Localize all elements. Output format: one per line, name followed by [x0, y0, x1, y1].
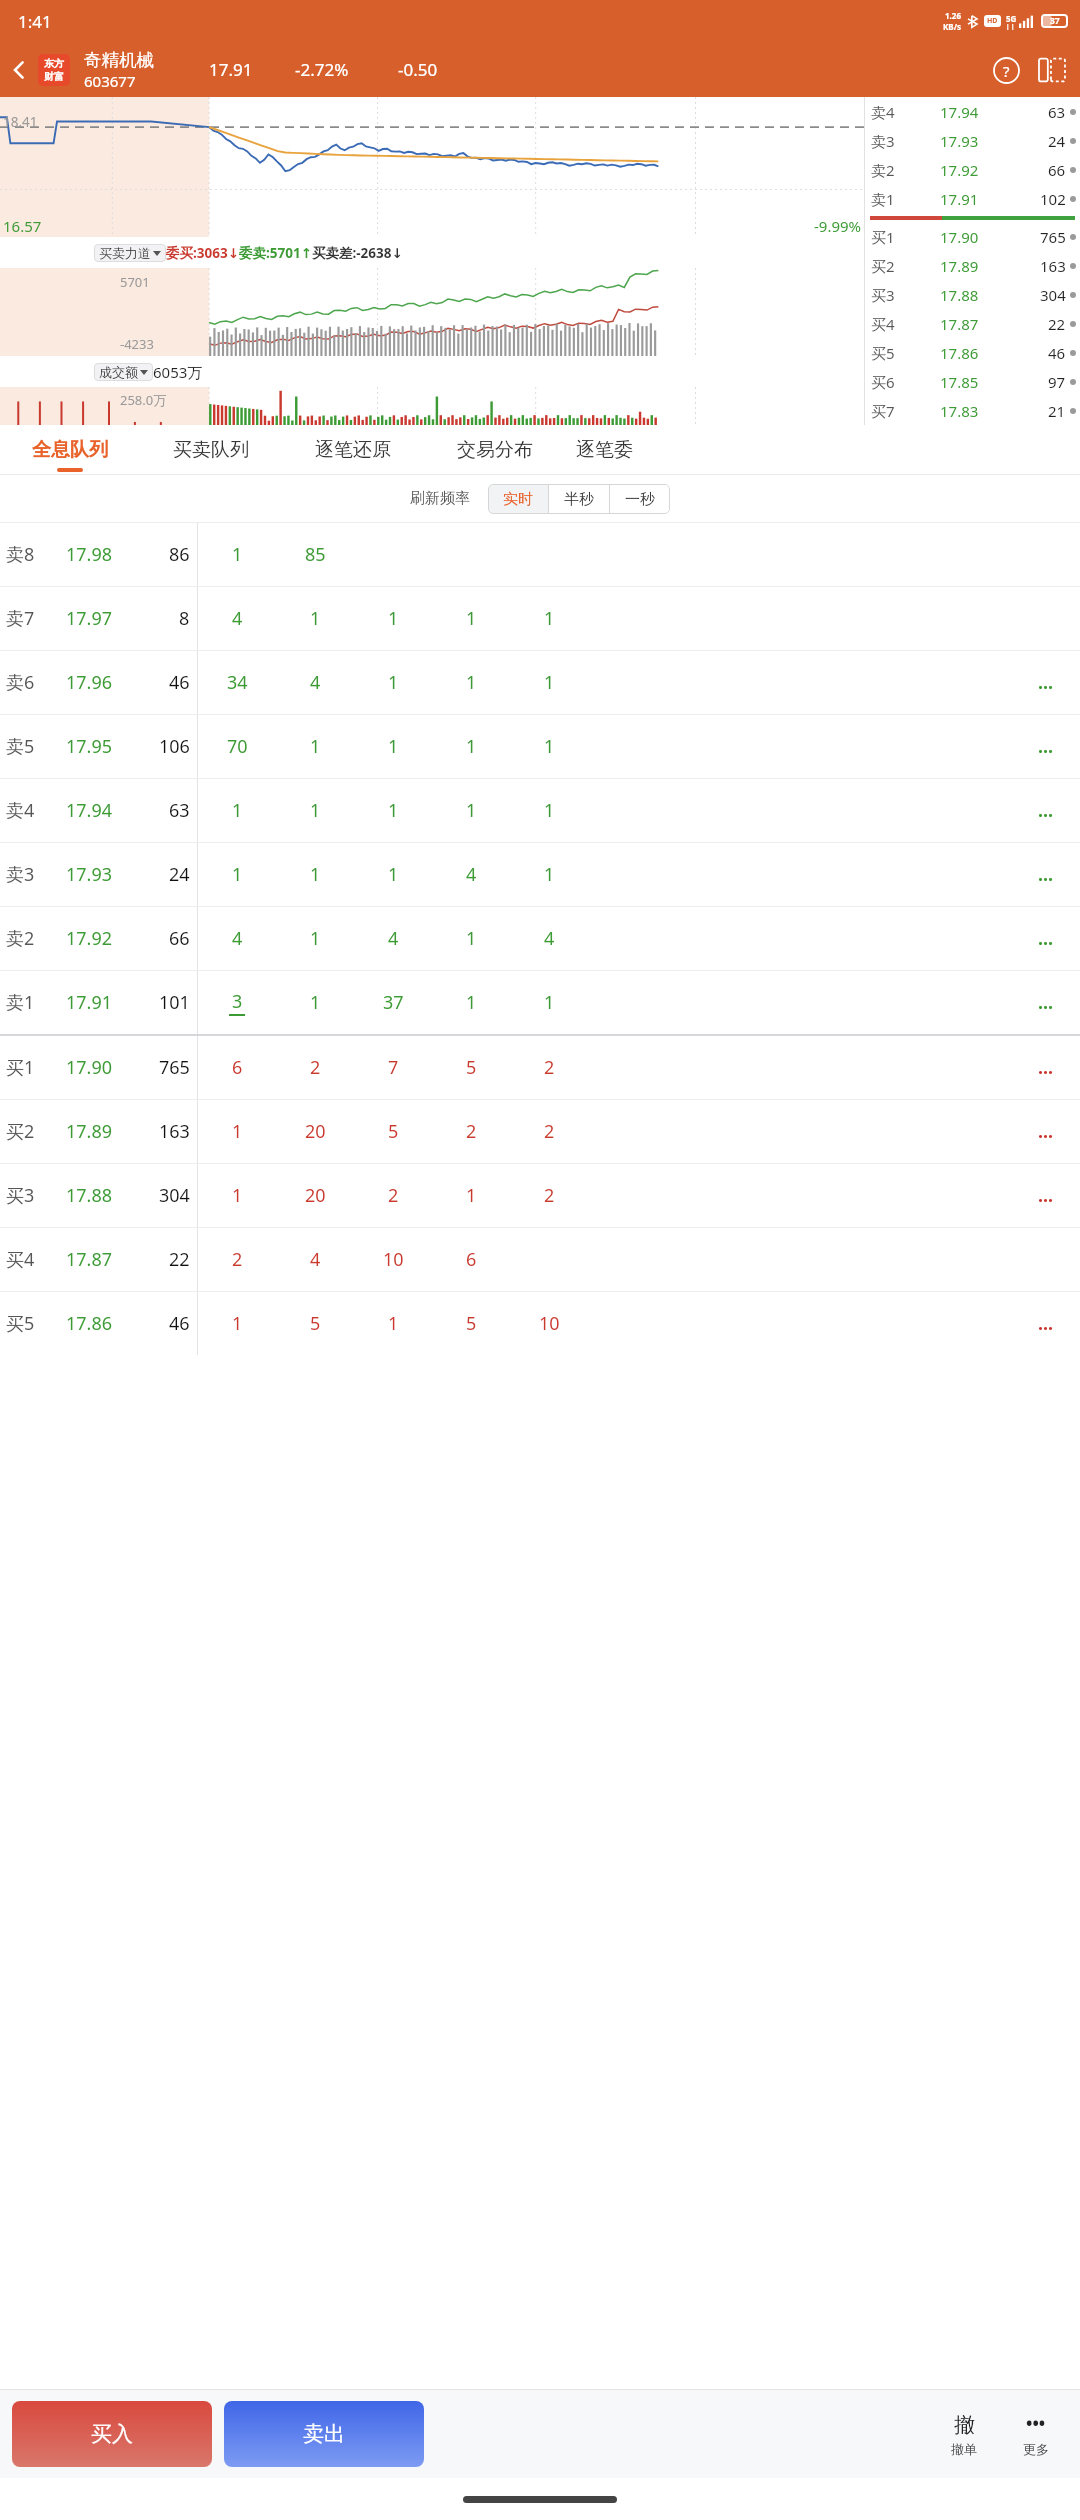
staticText: ?	[1003, 61, 1010, 81]
staticText: 106	[159, 734, 190, 759]
button[interactable]: 逐笔委	[566, 425, 676, 475]
staticText: 1	[466, 734, 477, 759]
staticText: 17.91	[940, 189, 979, 209]
staticText: 1	[466, 798, 477, 823]
button[interactable]: 买入	[12, 2401, 212, 2467]
staticText: 买3	[6, 1183, 50, 1208]
staticText: 1	[232, 542, 243, 567]
button[interactable]: 买卖队列	[140, 425, 282, 475]
staticText: HD	[987, 16, 998, 26]
button[interactable]: 买7	[871, 396, 1076, 425]
staticText: 17.88	[66, 1183, 113, 1208]
staticText: 17.86	[66, 1311, 113, 1336]
button[interactable]: Multi window	[1028, 46, 1076, 94]
button[interactable]: 买1	[0, 1036, 1080, 1099]
staticText: ...	[1038, 1311, 1054, 1336]
staticText: 2	[466, 1119, 477, 1144]
button[interactable]: 买1	[871, 222, 1076, 251]
button[interactable]: 卖3	[0, 843, 1080, 906]
staticText: 1	[466, 990, 477, 1015]
button[interactable]: Back	[0, 42, 38, 97]
button[interactable]: 卖8	[0, 523, 1080, 586]
button[interactable]: 买3	[871, 280, 1076, 309]
button[interactable]: •••	[1004, 2390, 1068, 2478]
staticText: 17.85	[940, 372, 979, 392]
staticText: ...	[1038, 862, 1054, 887]
button[interactable]: 卖7	[0, 587, 1080, 650]
staticText: 17.90	[66, 1055, 113, 1080]
button[interactable]: 成交额	[99, 364, 148, 380]
staticText: 34	[227, 670, 248, 695]
staticText: 17.93	[940, 131, 979, 151]
staticText: 1	[388, 862, 399, 887]
button[interactable]: 买2	[0, 1100, 1080, 1163]
staticText: 卖3	[6, 862, 50, 887]
staticText: 委卖:5701↑	[239, 244, 312, 262]
staticText: ...	[1038, 1055, 1054, 1080]
button[interactable]: 卖1	[0, 971, 1080, 1034]
staticText: 1	[232, 1311, 243, 1336]
button[interactable]: 买5	[871, 338, 1076, 367]
staticText: 买4	[6, 1247, 50, 1272]
staticText: 1	[388, 670, 399, 695]
staticText: 6053万	[153, 362, 203, 382]
staticText: 2	[388, 1183, 399, 1208]
staticText: 买卖差:-2638↓	[312, 244, 403, 262]
staticText: 逐笔委	[576, 438, 633, 462]
staticText: 10	[383, 1247, 404, 1272]
staticText: 66	[1048, 160, 1066, 180]
button[interactable]: 买2	[871, 251, 1076, 280]
staticText: 765	[1040, 227, 1066, 247]
staticText: 6	[232, 1055, 243, 1080]
staticText: 卖5	[6, 734, 50, 759]
staticText: 1	[466, 670, 477, 695]
button[interactable]: 一秒	[610, 484, 670, 514]
staticText: ...	[1038, 926, 1054, 951]
staticText: 1	[232, 1119, 243, 1144]
staticText: 603677	[84, 71, 136, 91]
button[interactable]: 卖4	[871, 97, 1076, 126]
button[interactable]: 买3	[0, 1164, 1080, 1227]
staticText: 买1	[6, 1055, 50, 1080]
staticText: 1	[232, 1183, 243, 1208]
staticText: 46	[1048, 343, 1066, 363]
staticText: 1	[310, 606, 321, 631]
button[interactable]: 逐笔还原	[282, 425, 424, 475]
button[interactable]: 撤	[932, 2390, 996, 2478]
button[interactable]: 卖2	[871, 155, 1076, 184]
staticText: 17.83	[940, 401, 979, 421]
button[interactable]: 卖2	[0, 907, 1080, 970]
button[interactable]: 买4	[871, 309, 1076, 338]
staticText: 卖7	[6, 606, 50, 631]
staticText: 奇精机械	[84, 49, 154, 71]
button[interactable]: 半秒	[549, 484, 609, 514]
button[interactable]: 买5	[0, 1292, 1080, 1355]
button[interactable]: 卖1	[871, 184, 1076, 213]
button[interactable]: 卖4	[0, 779, 1080, 842]
staticText: 卖4	[871, 102, 907, 122]
button[interactable]: Help	[984, 48, 1028, 92]
button[interactable]: 卖5	[0, 715, 1080, 778]
button[interactable]: 全息队列	[0, 425, 140, 475]
staticText: 买卖力道	[99, 245, 151, 261]
button[interactable]: 买4	[0, 1228, 1080, 1291]
staticText: 5G	[1006, 13, 1017, 24]
staticText: 46	[169, 1311, 190, 1336]
button[interactable]: 买卖力道	[99, 245, 161, 261]
staticText: 63	[1048, 102, 1066, 122]
button[interactable]: 卖6	[0, 651, 1080, 714]
button[interactable]: 实时	[488, 484, 548, 514]
button[interactable]: 卖出	[224, 2401, 424, 2467]
staticText: ...	[1038, 798, 1054, 823]
staticText: 17.86	[940, 343, 979, 363]
button[interactable]: 买6	[871, 367, 1076, 396]
staticText: 卖6	[6, 670, 50, 695]
staticText: 买7	[871, 401, 907, 421]
staticText: 17.98	[66, 542, 113, 567]
staticText: 2	[544, 1183, 555, 1208]
staticText: 1	[232, 862, 243, 887]
button[interactable]: 交易分布	[424, 425, 566, 475]
staticText: ...	[1038, 1119, 1054, 1144]
staticText: 8	[179, 606, 190, 631]
button[interactable]: 卖3	[871, 126, 1076, 155]
